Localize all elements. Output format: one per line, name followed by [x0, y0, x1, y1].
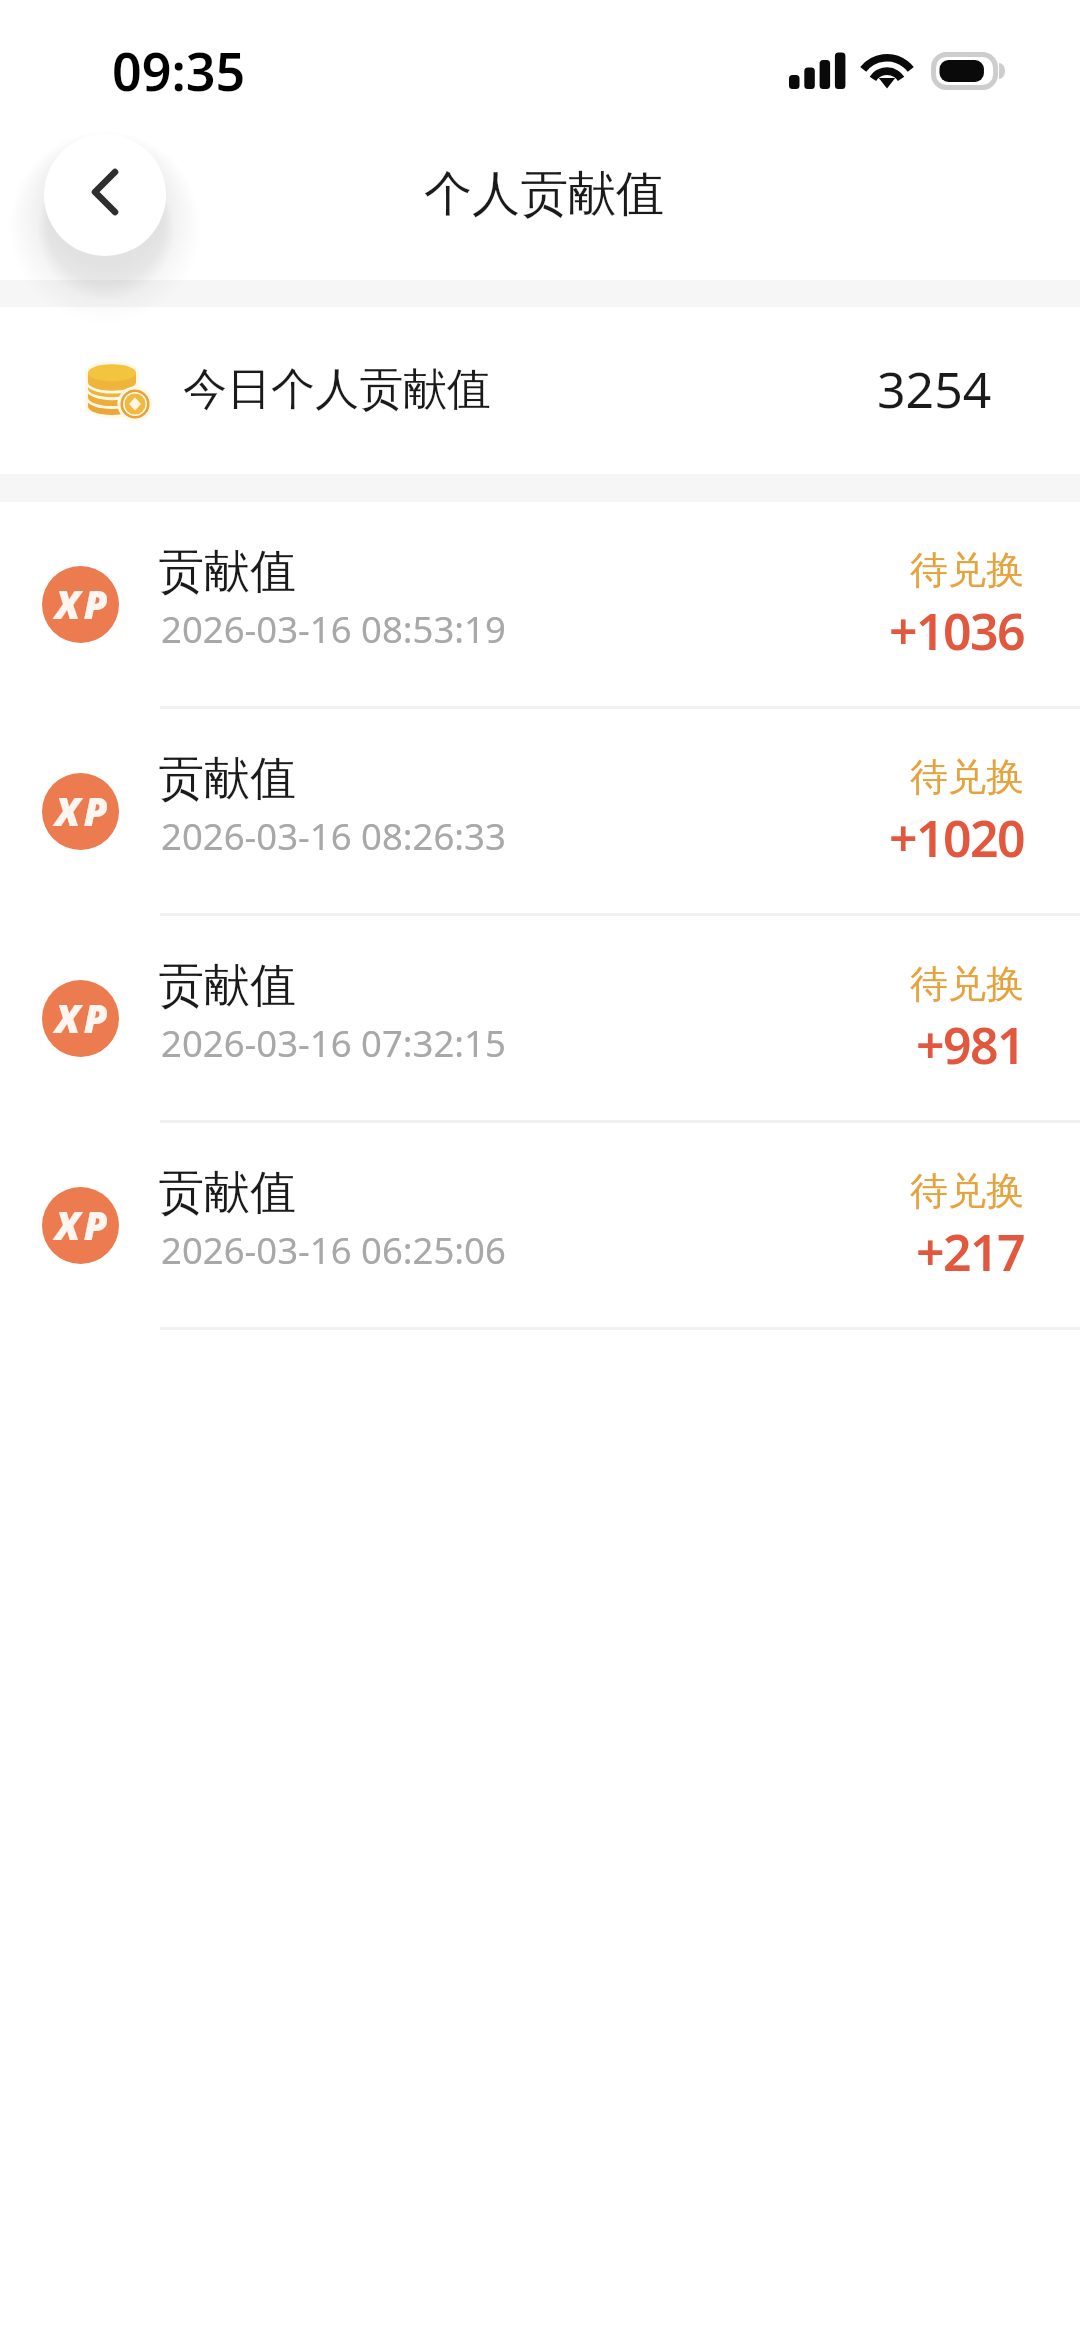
staticText: 贡献值 [158, 957, 296, 1015]
staticText: 2026-03-16 08:26:33 [161, 811, 506, 861]
staticText: 待兑换 [910, 960, 1024, 1008]
button[interactable]: Back [15, 105, 195, 285]
button[interactable]: XP [0, 502, 1080, 709]
staticText: 待兑换 [910, 753, 1024, 801]
staticText: XP [55, 785, 111, 837]
staticText: 贡献值 [158, 750, 296, 808]
staticText: XP [55, 1199, 111, 1251]
staticText: +1036 [889, 597, 1024, 665]
button[interactable]: 今日个人贡献值 [0, 307, 1080, 474]
staticText: 待兑换 [910, 546, 1024, 594]
staticText: +217 [916, 1218, 1024, 1286]
staticText: 09:35 [112, 35, 246, 106]
button[interactable]: XP [0, 916, 1080, 1123]
button[interactable]: XP [0, 709, 1080, 916]
staticText: 贡献值 [158, 1164, 296, 1222]
staticText: +1020 [889, 804, 1024, 872]
staticText: 贡献值 [158, 543, 296, 601]
staticText: +981 [916, 1011, 1024, 1079]
staticText: 2026-03-16 06:25:06 [161, 1225, 506, 1275]
staticText: XP [55, 992, 111, 1044]
button[interactable]: XP [0, 1123, 1080, 1330]
staticText: 个人贡献值 [424, 164, 664, 224]
staticText: 待兑换 [910, 1167, 1024, 1215]
staticText: XP [55, 578, 111, 630]
staticText: 2026-03-16 07:32:15 [161, 1018, 506, 1068]
staticText: 2026-03-16 08:53:19 [161, 604, 506, 654]
staticText: 3254 [877, 355, 992, 423]
staticText: 今日个人贡献值 [183, 362, 491, 417]
